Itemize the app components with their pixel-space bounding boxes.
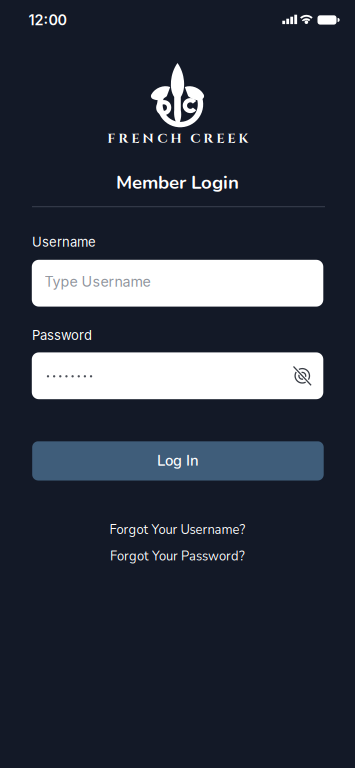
button[interactable]: Log In: [32, 441, 324, 480]
staticText: F R E N C H C R E E K: [107, 130, 248, 148]
button[interactable]: Forgot Your Username?: [109, 521, 245, 538]
staticText: Username: [32, 234, 96, 250]
staticText: Member Login: [116, 170, 239, 195]
staticText: 12:00: [28, 11, 66, 29]
staticText: Forgot Your Username?: [109, 521, 245, 538]
button[interactable]: Show password: [285, 359, 319, 393]
staticText: Password: [32, 327, 92, 343]
staticText: Forgot Your Password?: [110, 547, 245, 565]
staticText: Type Username: [44, 273, 150, 290]
staticText: Log In: [157, 451, 199, 471]
button[interactable]: Forgot Your Password?: [110, 547, 245, 565]
